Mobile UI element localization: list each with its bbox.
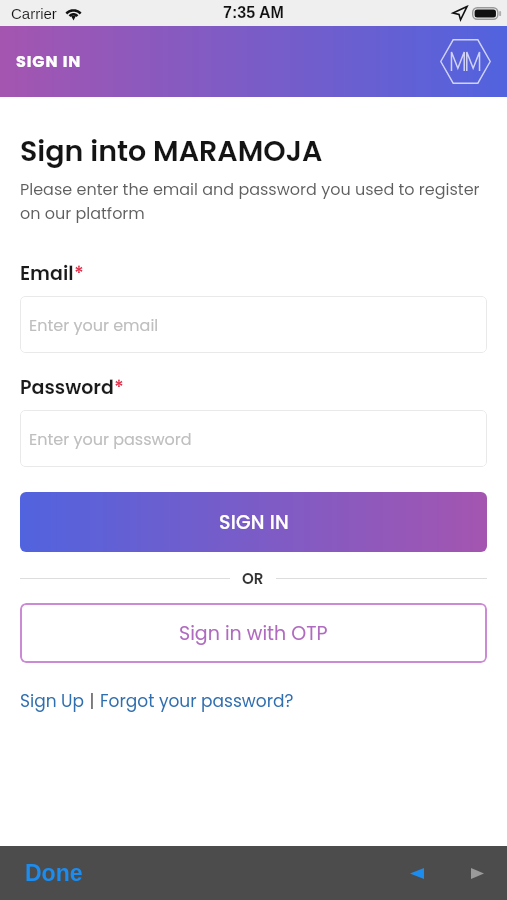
button[interactable]: SIGN IN bbox=[20, 492, 487, 552]
staticText: Password bbox=[20, 374, 114, 401]
staticText: Carrier bbox=[11, 5, 57, 22]
staticText: Please enter the email and password you … bbox=[20, 178, 487, 225]
staticText: | bbox=[85, 689, 100, 713]
button[interactable]: Forgot your password? bbox=[100, 689, 294, 713]
staticText: SIGN IN bbox=[219, 509, 289, 536]
staticText: OR bbox=[242, 568, 264, 589]
staticText: SIGN IN bbox=[16, 50, 82, 72]
staticText: Sign in with OTP bbox=[179, 620, 328, 647]
button[interactable]: Enter your password bbox=[20, 410, 487, 467]
button[interactable]: Previous field bbox=[397, 853, 437, 893]
staticText: * bbox=[114, 374, 124, 401]
button[interactable]: Done bbox=[25, 860, 83, 886]
button[interactable]: Sign Up bbox=[20, 689, 85, 713]
staticText: Email bbox=[20, 260, 74, 287]
staticText: Sign into MARAMOJA bbox=[20, 131, 323, 171]
button[interactable]: Sign in with OTP bbox=[20, 603, 487, 663]
staticText: Enter your password bbox=[29, 428, 192, 450]
staticText: 7:35 AM bbox=[223, 4, 284, 22]
button[interactable]: Next field bbox=[457, 853, 497, 893]
button[interactable]: Enter your email bbox=[20, 296, 487, 353]
staticText: * bbox=[74, 260, 84, 287]
staticText: Enter your email bbox=[29, 314, 159, 336]
